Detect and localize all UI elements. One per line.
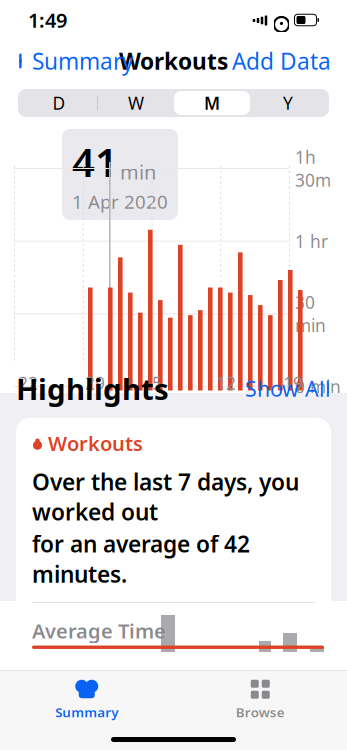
button[interactable]: W — [98, 91, 174, 115]
button[interactable]: M — [174, 91, 250, 115]
staticText: 1 hr — [295, 230, 328, 253]
staticText: 1h 30m — [295, 145, 331, 191]
button[interactable]: Summary — [39, 678, 135, 722]
staticText: Show All — [245, 374, 331, 403]
staticText: Average Time — [32, 617, 166, 644]
staticText: 22 — [18, 371, 38, 394]
staticText: Y — [283, 91, 293, 114]
staticText: 29 — [85, 371, 105, 394]
button[interactable]: Add Data — [224, 40, 339, 82]
staticText: Workouts — [48, 430, 143, 457]
staticText: Over the last 7 days, you worked out — [32, 467, 299, 527]
staticText: Workouts — [119, 46, 228, 76]
staticText: D — [52, 91, 65, 114]
button[interactable]: Y — [250, 91, 326, 115]
staticText: Browse — [236, 703, 285, 721]
staticText: 1:49 — [28, 7, 67, 33]
staticText: 0 min — [295, 375, 341, 398]
staticText: Highlights — [16, 369, 169, 408]
staticText: M — [204, 91, 220, 114]
staticText: Summary — [55, 703, 118, 721]
staticText: Add Data — [232, 46, 331, 76]
button[interactable]: Workouts — [16, 418, 331, 652]
staticText: min — [120, 159, 156, 185]
staticText: 30 min — [295, 291, 326, 337]
button[interactable]: D — [21, 91, 97, 115]
staticText: 19 — [283, 371, 303, 394]
staticText: 5 — [152, 371, 162, 394]
button[interactable]: Show All — [237, 370, 331, 407]
staticText: for an average of 42 minutes. — [32, 529, 250, 589]
staticText: W — [128, 91, 144, 114]
staticText: 1 Apr 2020 — [72, 189, 168, 214]
staticText: 12 — [216, 371, 236, 394]
staticText: 41 — [72, 135, 118, 188]
staticText: Summary — [32, 46, 134, 76]
button[interactable]: Browse — [212, 678, 308, 722]
button[interactable]: Summary — [8, 40, 142, 82]
